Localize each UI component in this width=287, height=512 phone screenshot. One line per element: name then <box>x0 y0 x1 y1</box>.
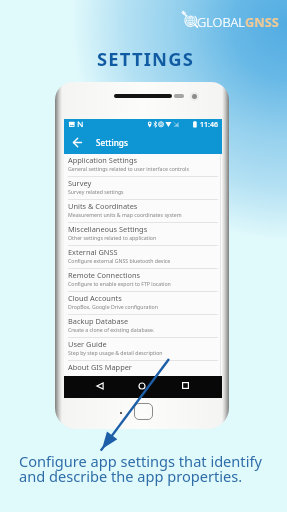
button[interactable]: Home <box>134 403 153 420</box>
staticText: Survey related settings <box>68 188 124 195</box>
button[interactable]: Recents <box>178 378 193 393</box>
staticText: DropBox, Google Drive configuration <box>68 303 158 310</box>
button[interactable]: Backup Database <box>64 315 222 337</box>
staticText: General settings related to user interfa… <box>68 165 189 172</box>
staticText: Create a clone of existing database. <box>68 326 155 333</box>
staticText: Units & Coordinates <box>68 201 138 211</box>
staticText: GNSS <box>245 13 279 30</box>
staticText: User Guide <box>68 339 107 349</box>
staticText: Other settings related to application <box>68 234 157 241</box>
button[interactable]: Survey <box>64 177 222 199</box>
staticText: Survey <box>68 178 92 188</box>
button[interactable]: Back <box>64 130 222 154</box>
button[interactable]: Remote Connections <box>64 269 222 291</box>
staticText: Settings <box>96 137 128 148</box>
staticText: Remote Connections <box>68 270 141 280</box>
staticText: Application Settings <box>68 155 137 165</box>
staticText: Configure external GNSS bluetooth device <box>68 257 171 264</box>
button[interactable]: External GNSS <box>64 246 222 268</box>
button[interactable]: Application Settings <box>64 154 222 176</box>
staticText: 11:46 <box>200 120 218 130</box>
staticText: Configure app settings that identify and… <box>19 451 262 486</box>
button[interactable]: Units & Coordinates <box>64 200 222 222</box>
button[interactable]: Back <box>92 378 107 393</box>
staticText: About GIS Mapper <box>68 362 132 372</box>
staticText: SETTINGS <box>2 46 287 71</box>
button[interactable]: Back <box>72 137 83 148</box>
staticText: Step by step usage & detail description <box>68 349 163 356</box>
button[interactable]: Home <box>134 378 149 393</box>
staticText: Cloud Accounts <box>68 293 122 303</box>
staticText: Miscellaneous Settings <box>68 224 148 234</box>
staticText: Backup Database <box>68 316 129 326</box>
button[interactable]: User Guide <box>64 338 222 360</box>
staticText: GLOBAL <box>197 13 245 30</box>
button[interactable]: Miscellaneous Settings <box>64 223 222 245</box>
staticText: Configure to enable export to FTP locati… <box>68 280 171 287</box>
staticText: Measurement units & map coordinates syst… <box>68 211 182 218</box>
button[interactable]: Cloud Accounts <box>64 292 222 314</box>
button[interactable]: About GIS Mapper <box>64 361 222 376</box>
staticText: External GNSS <box>68 247 118 257</box>
